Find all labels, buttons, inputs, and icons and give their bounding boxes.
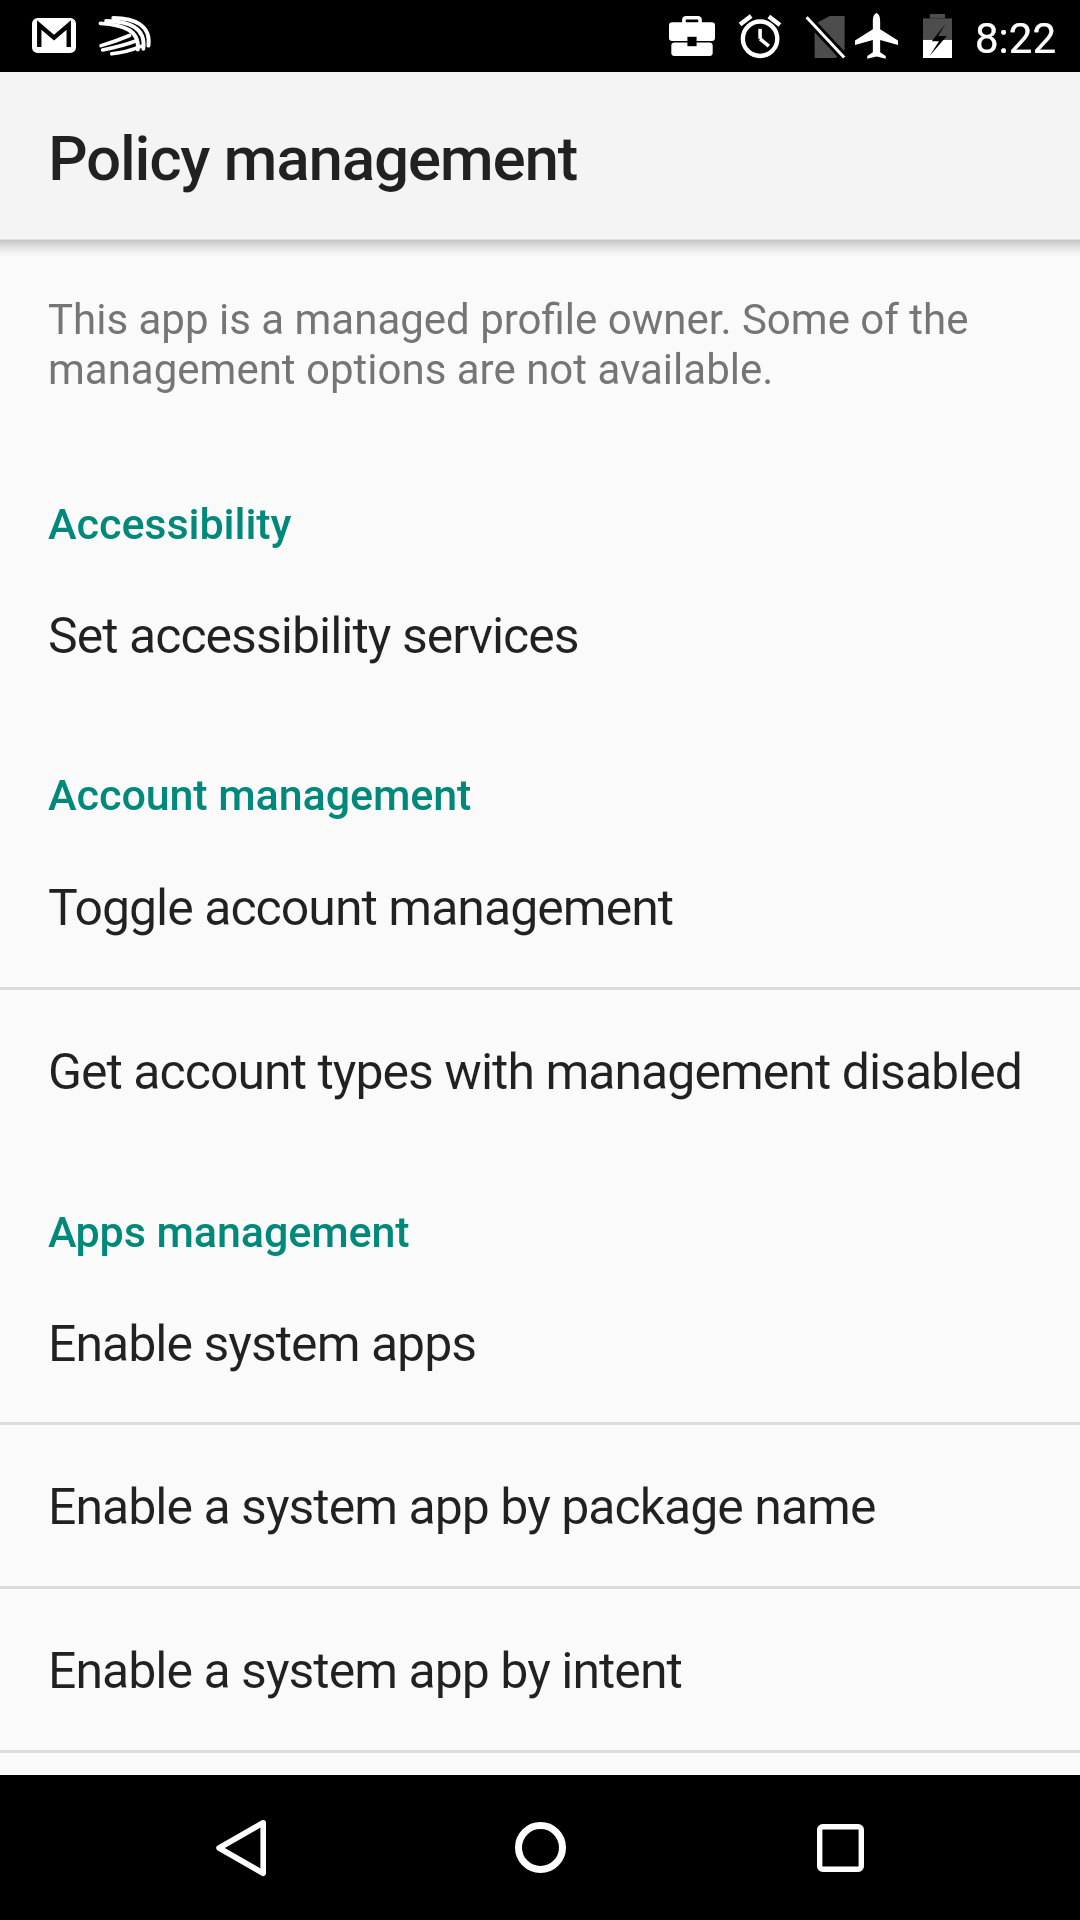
- button[interactable]: Recents: [768, 1775, 913, 1920]
- staticText: Policy management: [48, 122, 578, 195]
- staticText: Account management: [48, 770, 472, 820]
- button[interactable]: Toggle account management: [0, 823, 1080, 987]
- staticText: Accessibility: [48, 499, 292, 549]
- staticText: Enable system apps: [48, 1315, 477, 1374]
- button[interactable]: Back: [168, 1775, 313, 1920]
- button[interactable]: Set accessibility services: [0, 551, 1080, 715]
- staticText: Enable a system app by package name: [48, 1478, 876, 1537]
- button[interactable]: Enable a system app by intent: [0, 1586, 1080, 1750]
- staticText: Enable a system app by intent: [48, 1642, 682, 1701]
- staticText: Apps management: [48, 1207, 410, 1257]
- staticText: This app is a managed profile owner. Som…: [48, 295, 988, 394]
- button[interactable]: Enable a system app by package name: [0, 1422, 1080, 1586]
- staticText: Get account types with management disabl…: [48, 1043, 1023, 1102]
- button[interactable]: Enable system apps: [0, 1259, 1080, 1423]
- staticText: Toggle account management: [48, 879, 674, 938]
- staticText: 8:22: [975, 14, 1056, 63]
- button[interactable]: Home: [468, 1775, 613, 1920]
- staticText: Set accessibility services: [48, 607, 579, 666]
- button[interactable]: Get account types with management disabl…: [0, 987, 1080, 1151]
